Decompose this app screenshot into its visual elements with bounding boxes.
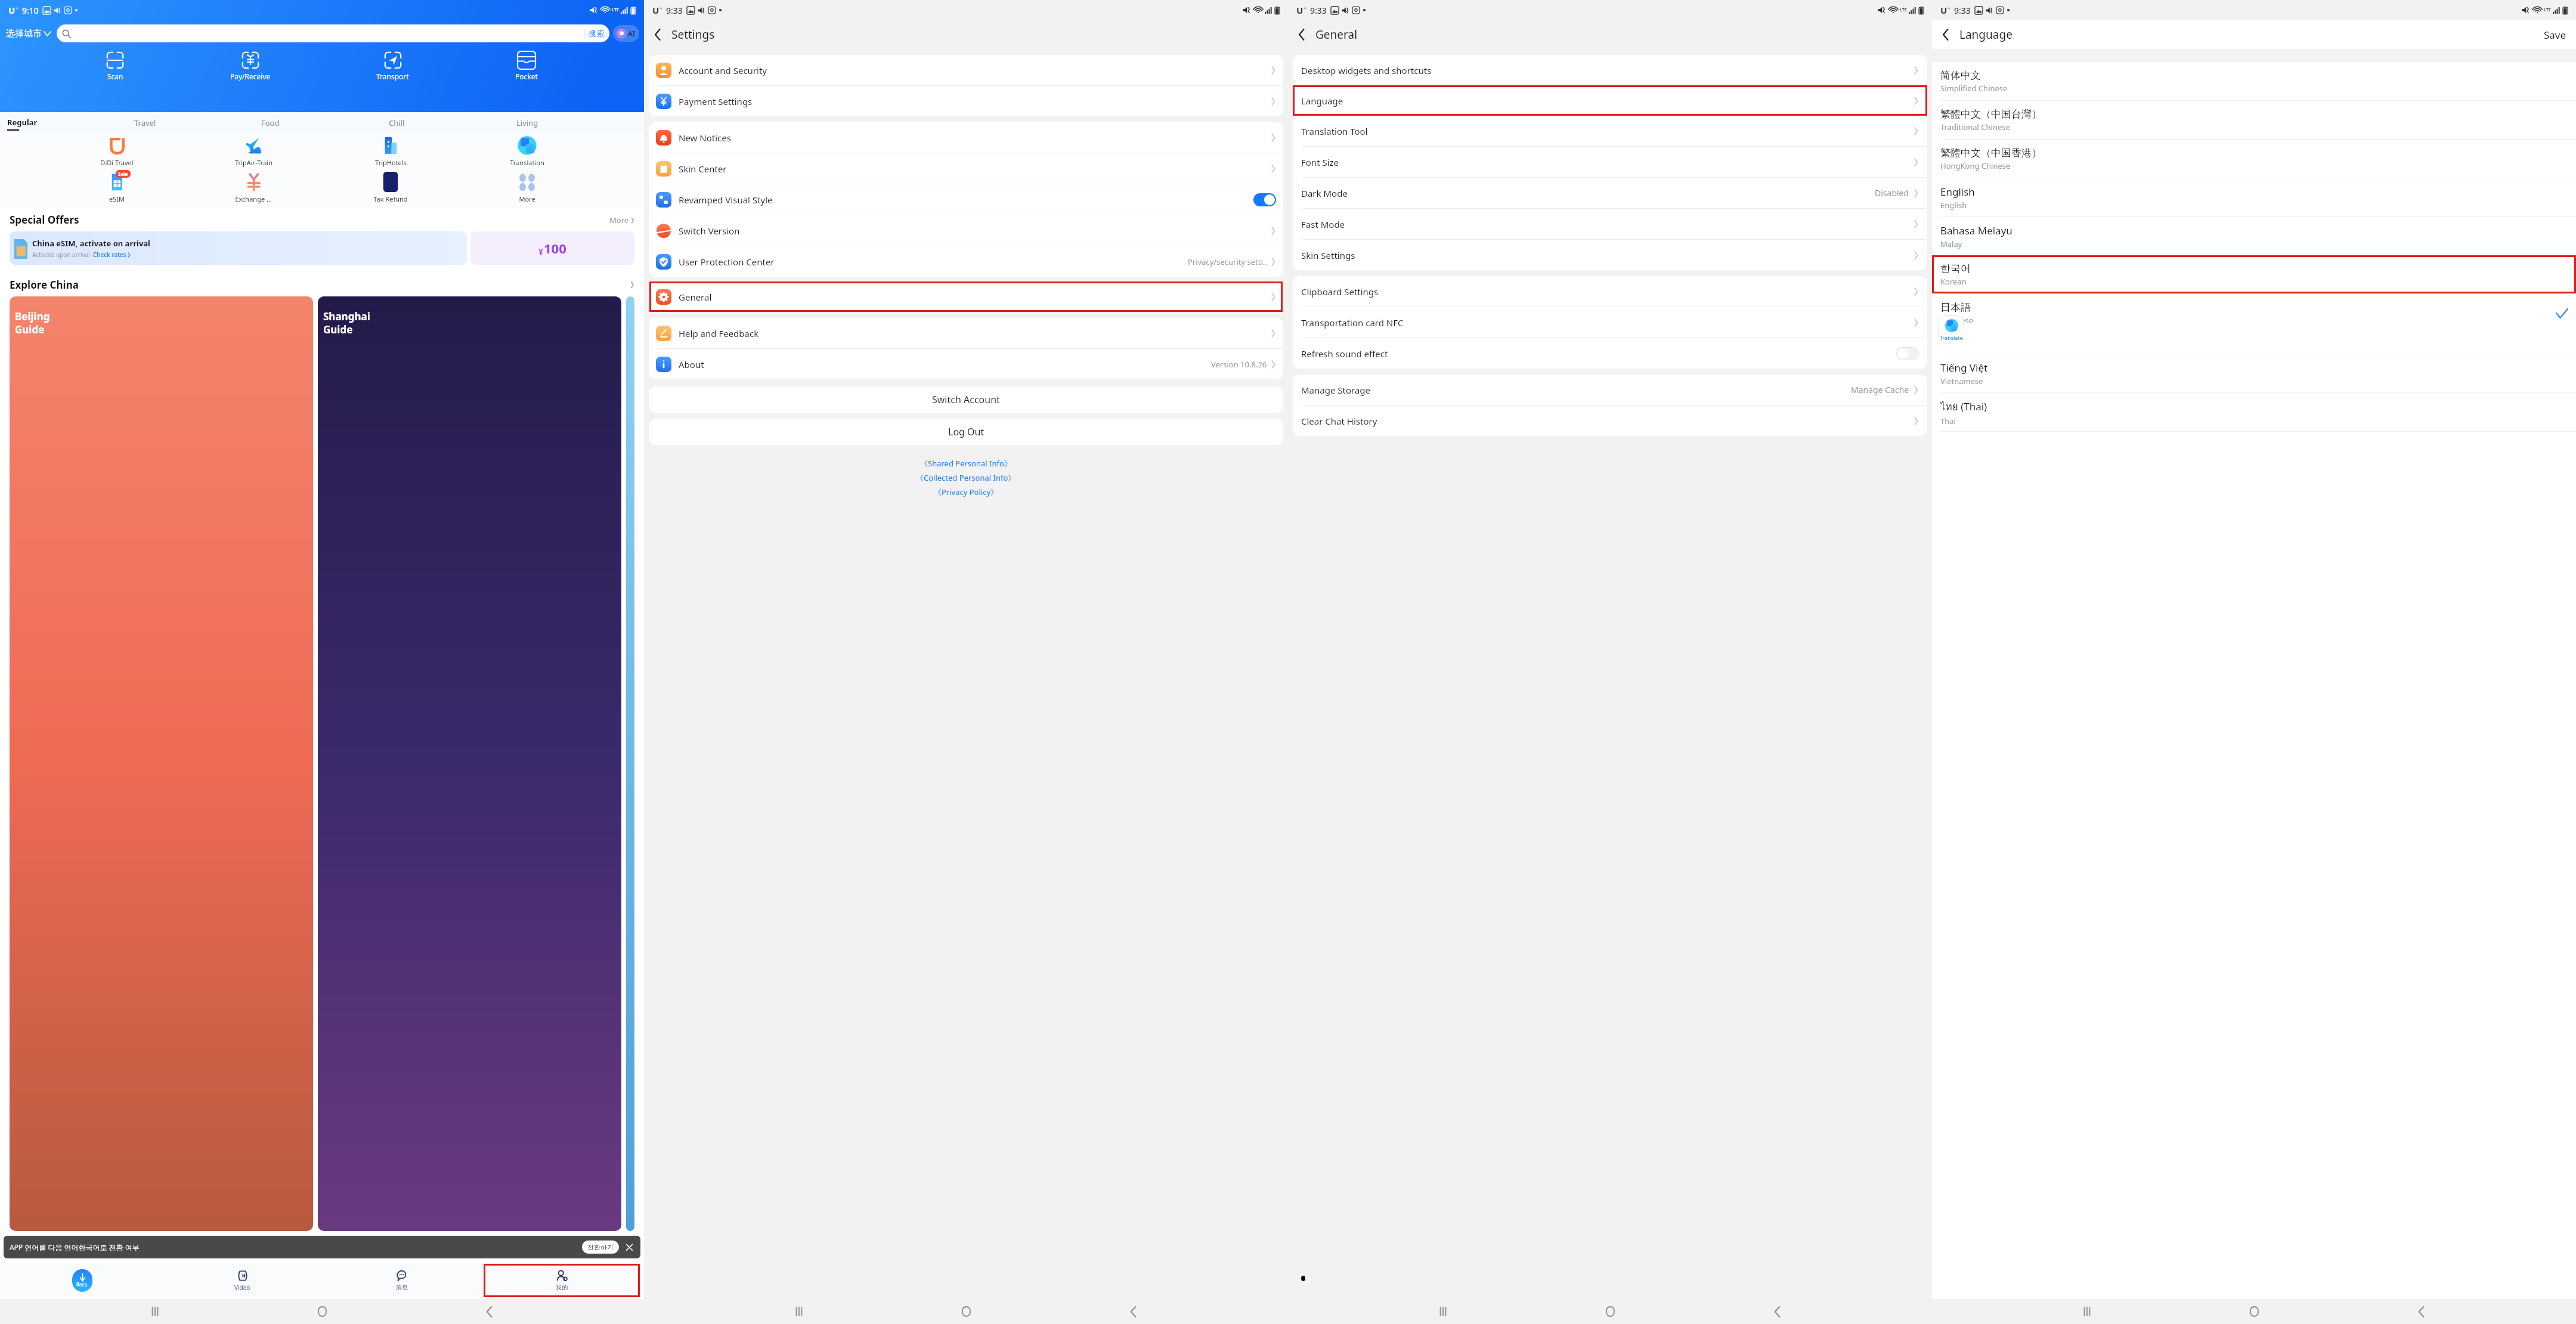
button[interactable]: Toggle	[1896, 347, 1919, 360]
button[interactable]: 전환하기	[582, 1241, 619, 1254]
button[interactable]: TripAir-Train	[233, 135, 274, 167]
button[interactable]: Transportation card NFC	[1293, 307, 1927, 338]
staticText: Transport	[376, 72, 409, 81]
staticText: Japanese	[1940, 315, 1974, 326]
button[interactable]: 《Collected Personal Info》	[916, 472, 1016, 483]
button[interactable]: 《Privacy Policy》	[934, 487, 999, 497]
button[interactable]: 日本語	[1932, 294, 2576, 332]
button[interactable]: Clear Chat History	[1293, 406, 1927, 436]
button[interactable]: Language	[1293, 85, 1927, 116]
button[interactable]: Account and Security	[649, 55, 1283, 85]
button[interactable]: Beijing Guide	[10, 296, 313, 1231]
button[interactable]: Refresh sound effect	[1293, 338, 1927, 369]
button[interactable]: Tiếng Việt	[1932, 354, 2576, 392]
staticText: eSIM	[109, 194, 125, 203]
button[interactable]: 选择城市	[6, 28, 51, 39]
staticText: General	[679, 291, 712, 303]
button[interactable]: Transport	[376, 50, 409, 82]
button[interactable]: Close	[624, 1242, 634, 1252]
button[interactable]: Skin Settings	[1293, 240, 1927, 270]
button[interactable]: Sale	[97, 172, 137, 203]
button[interactable]: Scan	[106, 50, 124, 82]
button[interactable]: More	[609, 215, 634, 225]
button[interactable]: Tax Refund	[370, 172, 411, 203]
button[interactable]: Back	[2409, 1300, 2433, 1323]
button[interactable]: General	[649, 281, 1283, 312]
button[interactable]: 搜索	[57, 24, 609, 42]
staticText: Activate upon arrival	[32, 250, 90, 259]
button[interactable]: Dark Mode	[1293, 178, 1927, 208]
button[interactable]: Back	[1121, 1300, 1145, 1323]
button[interactable]: Food	[261, 117, 389, 130]
button[interactable]: Font Size	[1293, 147, 1927, 177]
button[interactable]: DiDi Travel	[97, 135, 137, 167]
staticText: More	[519, 194, 535, 203]
button[interactable]: Toggle	[1253, 193, 1276, 206]
button[interactable]: Switch Version	[649, 215, 1283, 246]
button[interactable]: About	[649, 349, 1283, 379]
staticText: Beijing Guide	[15, 310, 50, 336]
staticText: Special Offers	[10, 213, 79, 227]
button[interactable]: Chill	[389, 117, 516, 130]
button[interactable]: Translation Tool	[1293, 116, 1927, 146]
button[interactable]: Home	[1598, 1300, 1622, 1323]
button[interactable]: Recents	[787, 1300, 811, 1323]
button[interactable]: Translation	[507, 135, 547, 167]
button[interactable]: Save	[2534, 20, 2576, 49]
button[interactable]: Fast Mode	[1293, 209, 1927, 239]
button[interactable]: Revamped Visual Style	[649, 184, 1283, 215]
button[interactable]: Recommend	[2, 1262, 162, 1299]
button[interactable]: Log Out	[649, 419, 1283, 445]
button[interactable]: Travel	[134, 117, 261, 130]
staticText: Exchange Rate	[233, 194, 274, 203]
button[interactable]: Manage Storage	[1293, 375, 1927, 405]
staticText: Explore China	[10, 278, 79, 292]
button[interactable]: 简体中文	[1932, 62, 2576, 100]
button[interactable]: Clipboard Settings	[1293, 276, 1927, 307]
button[interactable]: Payment Settings	[649, 86, 1283, 116]
button[interactable]: Home	[310, 1300, 334, 1323]
button[interactable]: Shanghai Guide	[318, 296, 621, 1231]
button[interactable]: Back	[477, 1300, 501, 1323]
button[interactable]: Switch Account	[649, 386, 1283, 413]
button[interactable]: Skin Center	[649, 153, 1283, 184]
button[interactable]: Recents	[1431, 1300, 1455, 1323]
button[interactable]: ไทย (Thai)	[1932, 393, 2576, 431]
button[interactable]: Video	[162, 1262, 322, 1299]
button[interactable]: Exchange Rate	[233, 172, 274, 203]
button[interactable]: Translate	[1938, 315, 1964, 344]
button[interactable]: More	[630, 281, 634, 289]
button[interactable]: 繁體中文（中国台灣）	[1932, 101, 2576, 139]
button[interactable]: 《Shared Personal Info》	[920, 458, 1012, 469]
button[interactable]: Pay/Receive	[230, 50, 271, 82]
button[interactable]: Recents	[143, 1300, 167, 1323]
button[interactable]: Bahasa Melayu	[1932, 217, 2576, 255]
button[interactable]: TripHotels	[370, 135, 411, 167]
button[interactable]: 我的	[484, 1264, 640, 1297]
button[interactable]: Back	[644, 20, 671, 49]
button[interactable]: Pocket	[515, 50, 538, 82]
button[interactable]: ¥	[470, 231, 634, 265]
button[interactable]: Recents	[2075, 1300, 2099, 1323]
button[interactable]: China eSIM, activate on arrival	[10, 231, 467, 265]
button[interactable]: Back	[1932, 20, 1959, 49]
button[interactable]: Desktop widgets and shortcuts	[1293, 55, 1927, 85]
staticText: 日本語	[1940, 301, 1971, 314]
button[interactable]: Home	[954, 1300, 978, 1323]
button[interactable]: Home	[2242, 1300, 2266, 1323]
button[interactable]: Help and Feedback	[649, 318, 1283, 348]
button[interactable]: 繁體中文（中国香港）	[1932, 140, 2576, 178]
button[interactable]: 한국어	[1932, 255, 2576, 293]
button[interactable]: AI	[613, 25, 639, 42]
button[interactable]: Back	[1288, 20, 1315, 49]
button[interactable]: New Notices	[649, 122, 1283, 153]
button[interactable]: Regular	[7, 117, 134, 131]
staticText: 100	[544, 239, 566, 257]
button[interactable]: English	[1932, 178, 2576, 216]
button[interactable]: Living	[516, 117, 644, 130]
button[interactable]: More	[507, 172, 547, 203]
button[interactable]: User Protection Center	[649, 246, 1283, 277]
button[interactable]: Back	[1765, 1300, 1789, 1323]
staticText: Account and Security	[679, 64, 767, 76]
button[interactable]: 消息	[322, 1262, 482, 1299]
